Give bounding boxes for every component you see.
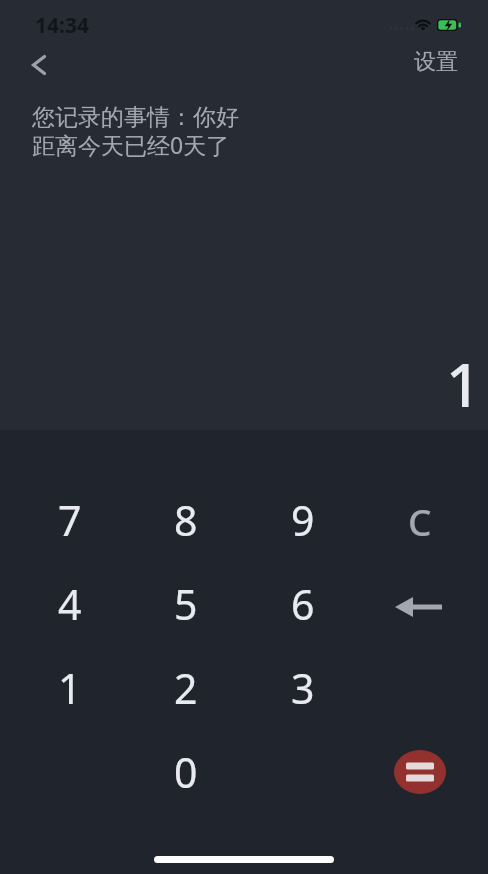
button[interactable]: 4: [12, 562, 128, 646]
staticText: 2: [174, 660, 198, 716]
button[interactable]: Back: [16, 44, 64, 86]
button[interactable]: 8: [128, 478, 244, 562]
button[interactable]: Clear: [361, 478, 478, 562]
staticText: 3: [291, 660, 315, 716]
button[interactable]: 6: [244, 562, 361, 646]
staticText: 0: [174, 744, 198, 800]
button[interactable]: 3: [244, 646, 361, 730]
staticText: 8: [174, 492, 198, 548]
button[interactable]: 7: [12, 478, 128, 562]
staticText: 6: [291, 576, 315, 632]
staticText: 1: [446, 343, 481, 425]
staticText: 您记录的事情：你好 距离今天已经0天了: [32, 103, 239, 161]
button[interactable]: 1: [12, 646, 128, 730]
button[interactable]: 0: [128, 730, 244, 814]
button[interactable]: Backspace: [361, 562, 478, 646]
staticText: 9: [291, 492, 315, 548]
staticText: C: [408, 496, 432, 546]
button[interactable]: 5: [128, 562, 244, 646]
button[interactable]: 2: [128, 646, 244, 730]
staticText: 7: [58, 492, 82, 548]
staticText: 14:34: [35, 11, 89, 40]
button[interactable]: 9: [244, 478, 361, 562]
staticText: 设置: [414, 48, 458, 74]
staticText: 5: [174, 576, 198, 632]
button[interactable]: Equals: [361, 730, 478, 814]
button[interactable]: 设置: [386, 44, 488, 86]
staticText: 4: [58, 576, 82, 632]
staticText: 1: [58, 660, 82, 716]
